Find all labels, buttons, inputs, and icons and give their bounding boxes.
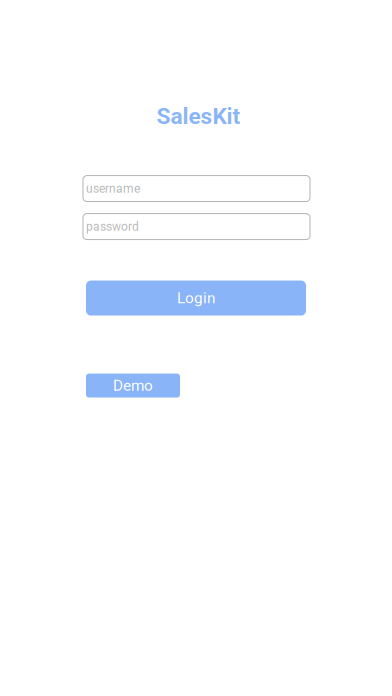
staticText: password — [86, 219, 139, 234]
staticText: username — [86, 181, 140, 196]
staticText: Login — [177, 289, 215, 307]
staticText: SalesKit — [156, 103, 240, 130]
button[interactable]: password — [83, 214, 310, 240]
button[interactable]: username — [83, 176, 310, 202]
button[interactable]: Demo — [86, 374, 180, 398]
staticText: Demo — [113, 377, 153, 395]
button[interactable]: Login — [86, 281, 306, 316]
